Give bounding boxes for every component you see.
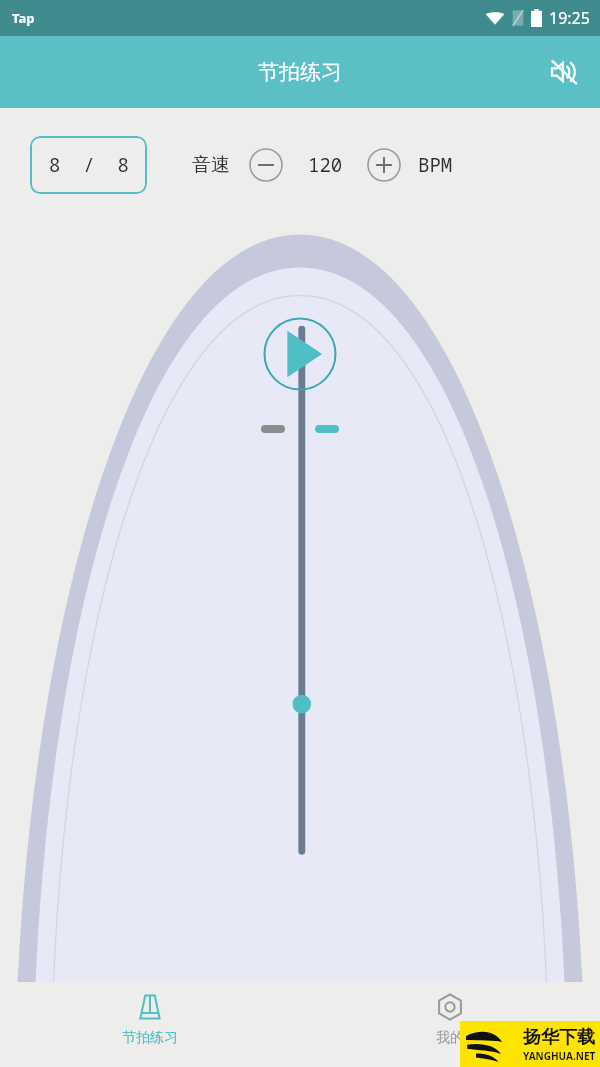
staticText: YANGHUA.NET [523, 1049, 596, 1063]
button[interactable]: Increase tempo [366, 147, 402, 183]
button[interactable]: 我的 [300, 982, 600, 1067]
button[interactable]: 节拍练习 [0, 982, 300, 1067]
staticText: 19:25 [549, 7, 590, 29]
button[interactable]: Page 2 [315, 425, 339, 433]
staticText: 扬华下载 [523, 1026, 595, 1049]
button[interactable]: Mute [540, 48, 588, 96]
button[interactable]: Play [263, 317, 337, 391]
button[interactable]: Page 1 [261, 425, 285, 433]
staticText: 节拍练习 [122, 1029, 178, 1047]
staticText: 120 [308, 152, 343, 178]
staticText: 8 / 8 [49, 152, 129, 178]
button[interactable]: Decrease tempo [248, 147, 284, 183]
staticText: 我的 [436, 1029, 464, 1047]
staticText: 节拍练习 [258, 59, 342, 85]
button[interactable]: 8 / 8 [30, 136, 147, 194]
staticText: BPM [418, 152, 453, 178]
staticText: 音速 [192, 153, 230, 177]
staticText: Tap [12, 9, 35, 27]
